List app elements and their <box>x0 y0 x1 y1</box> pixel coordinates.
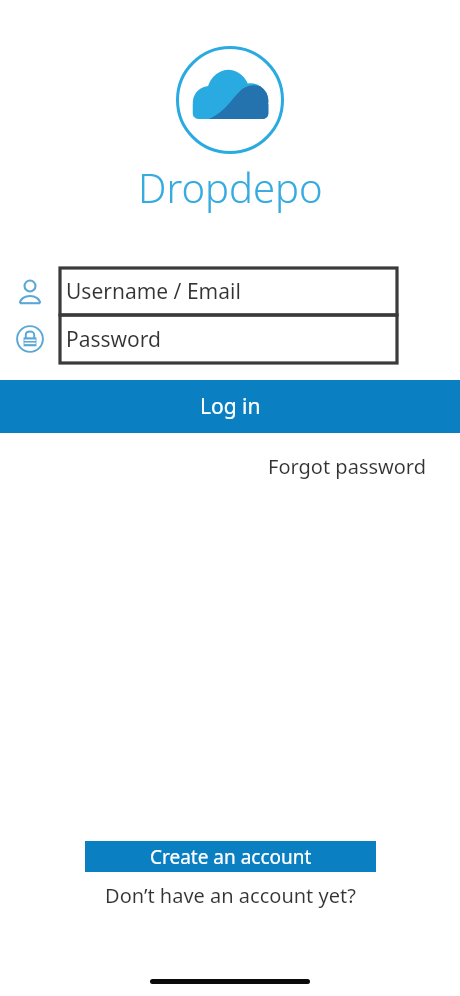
staticText: Create an account <box>150 844 312 870</box>
button[interactable]: Username / Email <box>60 268 397 315</box>
staticText: Forgot password <box>268 453 427 480</box>
staticText: Don’t have an account yet? <box>105 882 356 909</box>
button[interactable]: Forgot password <box>268 451 460 482</box>
staticText: Username / Email <box>66 277 241 306</box>
button[interactable]: Log in <box>0 380 460 433</box>
button[interactable]: Create an account <box>85 841 376 872</box>
staticText: Password <box>66 325 161 354</box>
staticText: Log in <box>200 392 261 421</box>
button[interactable]: Password <box>60 315 397 363</box>
staticText: Dropdepo <box>138 160 323 214</box>
